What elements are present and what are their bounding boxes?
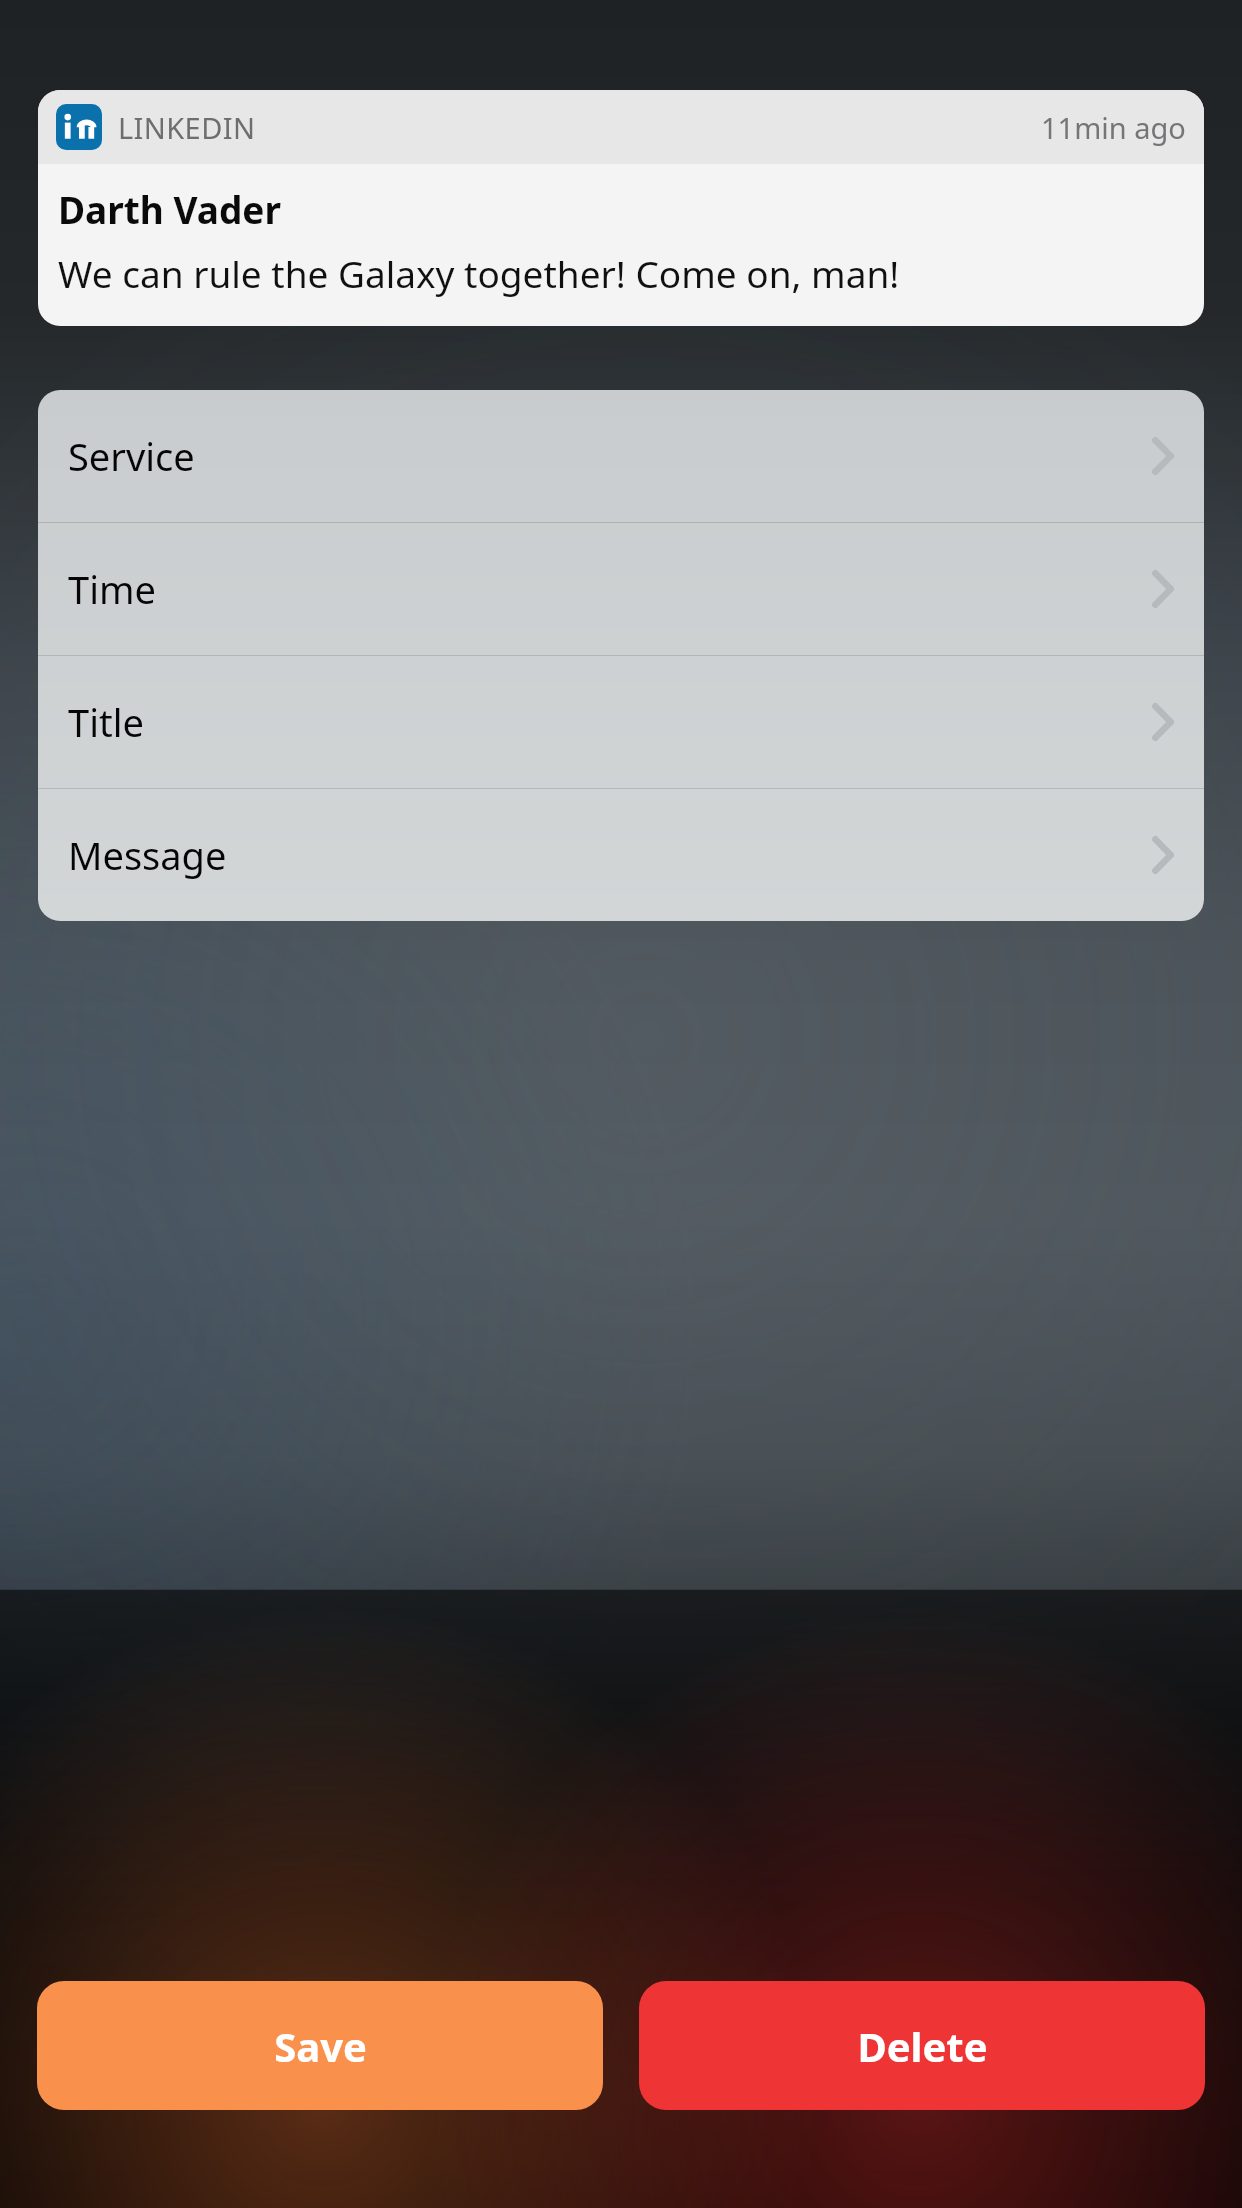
button[interactable]: Save [37, 1981, 603, 2110]
button[interactable]: Service [38, 390, 1204, 522]
staticText: Service [68, 430, 195, 482]
staticText: Darth Vader [58, 184, 281, 234]
staticText: Delete [857, 2019, 988, 2073]
staticText: 11min ago [1041, 108, 1186, 147]
staticText: LINKEDIN [118, 108, 256, 147]
button[interactable]: Message [38, 789, 1204, 921]
other: Open [1152, 703, 1174, 741]
staticText: Save [274, 2019, 367, 2073]
button[interactable]: Delete [639, 1981, 1205, 2110]
other: Open [1152, 836, 1174, 874]
staticText: Title [68, 696, 144, 748]
other: Open [1152, 437, 1174, 475]
staticText: Time [68, 563, 156, 615]
button[interactable]: Time [38, 523, 1204, 655]
button[interactable]: LINKEDIN [38, 90, 1204, 326]
other: Open [1152, 570, 1174, 608]
staticText: Message [68, 829, 227, 881]
staticText: We can rule the Galaxy together! Come on… [58, 248, 900, 298]
button[interactable]: Title [38, 656, 1204, 788]
